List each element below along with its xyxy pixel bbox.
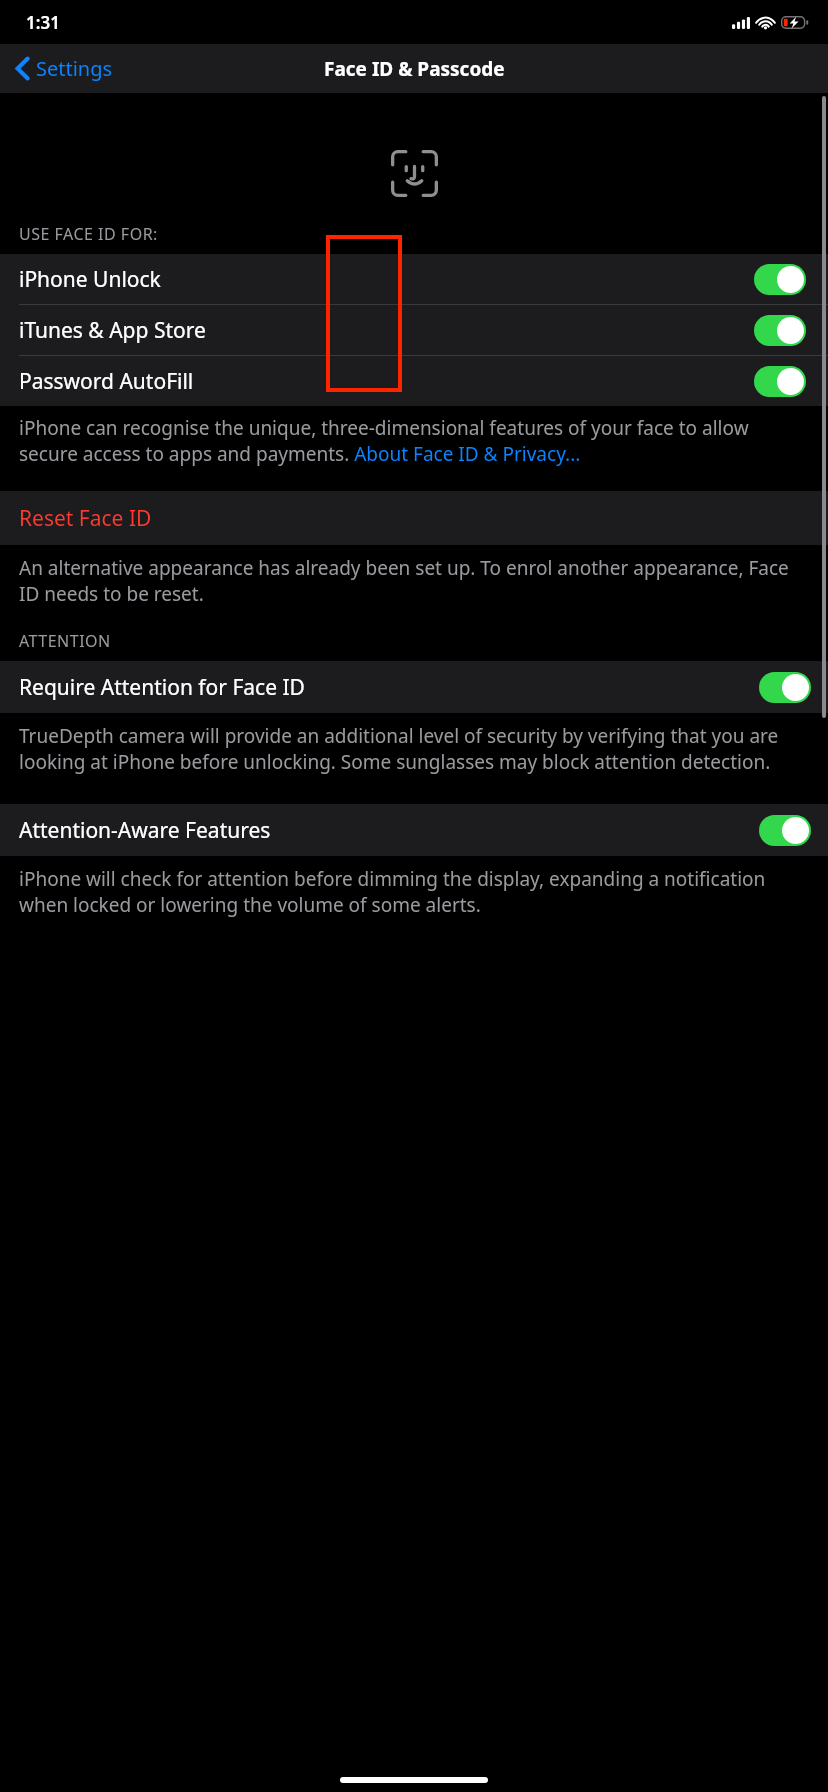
staticText: Attention-Aware Features (19, 816, 271, 845)
button[interactable]: Switch on (759, 672, 811, 703)
button[interactable]: Settings (10, 50, 119, 87)
staticText: Reset Face ID (19, 504, 152, 533)
button[interactable]: iPhone Unlock (0, 254, 828, 304)
button[interactable]: Switch on (754, 315, 806, 346)
button[interactable]: Attention-Aware Features (0, 804, 828, 856)
staticText: Require Attention for Face ID (19, 673, 305, 702)
staticText: An alternative appearance has already be… (19, 555, 802, 606)
staticText: iTunes & App Store (19, 316, 206, 345)
button[interactable]: Password AutoFill (0, 356, 828, 406)
staticText: ATTENTION (19, 630, 111, 652)
staticText: Face ID & Passcode (324, 56, 505, 82)
button[interactable]: Require Attention for Face ID (0, 661, 828, 713)
button[interactable]: Switch on (759, 815, 811, 846)
staticText: USE FACE ID FOR: (19, 223, 158, 245)
staticText: iPhone Unlock (19, 265, 161, 294)
button[interactable]: Switch on (754, 264, 806, 295)
staticText: 1:31 (26, 11, 60, 34)
button[interactable]: Reset Face ID (0, 491, 828, 545)
button[interactable]: iTunes & App Store (0, 305, 828, 355)
staticText: Settings (36, 55, 113, 82)
button[interactable]: Switch on (754, 366, 806, 397)
staticText: iPhone can recognise the unique, three-d… (19, 415, 802, 466)
staticText: TrueDepth camera will provide an additio… (19, 723, 802, 774)
staticText: iPhone will check for attention before d… (19, 866, 802, 917)
staticText: Password AutoFill (19, 367, 194, 396)
